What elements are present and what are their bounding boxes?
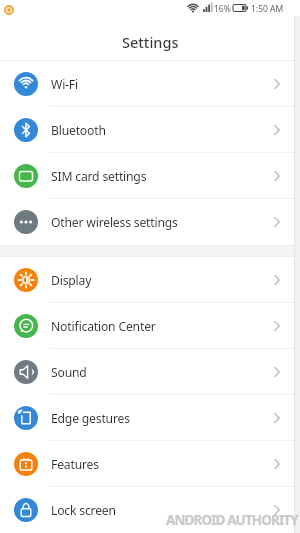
- staticText: ANDROID AUTHORITY: [166, 511, 298, 529]
- button[interactable]: Features: [0, 441, 300, 487]
- staticText: Bluetooth: [51, 122, 106, 139]
- staticText: Lock screen: [51, 502, 116, 519]
- button[interactable]: Wi-Fi: [0, 61, 300, 107]
- staticText: SIM card settings: [51, 168, 147, 185]
- staticText: 16%: [214, 3, 231, 15]
- staticText: 1:50 AM: [251, 3, 284, 15]
- button[interactable]: Notification Center: [0, 303, 300, 349]
- button[interactable]: Other wireless settings: [0, 199, 300, 245]
- button[interactable]: Edge gestures: [0, 395, 300, 441]
- staticText: Notification Center: [51, 318, 156, 335]
- button[interactable]: Display: [0, 257, 300, 303]
- staticText: Edge gestures: [51, 410, 130, 427]
- staticText: Settings: [122, 32, 179, 52]
- staticText: Display: [51, 272, 92, 289]
- button[interactable]: Lock screen: [0, 487, 300, 533]
- button[interactable]: Sound: [0, 349, 300, 395]
- staticText: Features: [51, 456, 99, 473]
- button[interactable]: Bluetooth: [0, 107, 300, 153]
- button[interactable]: SIM card settings: [0, 153, 300, 199]
- staticText: Sound: [51, 364, 87, 381]
- staticText: Wi-Fi: [51, 76, 78, 93]
- staticText: Other wireless settings: [51, 214, 178, 231]
